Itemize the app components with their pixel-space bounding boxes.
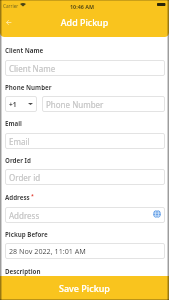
staticText: Add Pickup: [0, 16, 169, 28]
staticText: 10:46 AM: [70, 3, 95, 10]
button[interactable]: Client Name: [5, 60, 165, 76]
button[interactable]: Phone Number: [42, 96, 165, 112]
button[interactable]: Pick location on map: [153, 210, 161, 218]
staticText: Address: [9, 210, 40, 221]
staticText: Pickup Before: [5, 230, 48, 238]
staticText: Description: [5, 267, 41, 275]
staticText: 28 Nov 2022, 11:01 AM: [9, 246, 86, 256]
staticText: Email: [9, 136, 30, 147]
button[interactable]: +1: [5, 96, 37, 112]
staticText: Order id: [9, 172, 41, 183]
button[interactable]: Address: [5, 207, 165, 223]
staticText: Carrier: [3, 3, 19, 9]
button[interactable]: 28 Nov 2022, 11:01 AM: [5, 243, 165, 259]
staticText: Address *: [5, 192, 34, 201]
staticText: Phone Number: [5, 83, 52, 91]
staticText: Client Name: [5, 46, 44, 54]
staticText: Save Pickup: [59, 282, 110, 294]
button[interactable]: Order id: [5, 169, 165, 185]
staticText: +1: [9, 100, 17, 109]
staticText: Order Id: [5, 156, 31, 164]
staticText: Email: [5, 119, 22, 127]
button[interactable]: Back: [1, 15, 15, 29]
button[interactable]: Save Pickup: [0, 276, 169, 300]
staticText: Client Name: [9, 63, 56, 74]
staticText: Phone Number: [46, 99, 104, 110]
button[interactable]: Email: [5, 133, 165, 149]
